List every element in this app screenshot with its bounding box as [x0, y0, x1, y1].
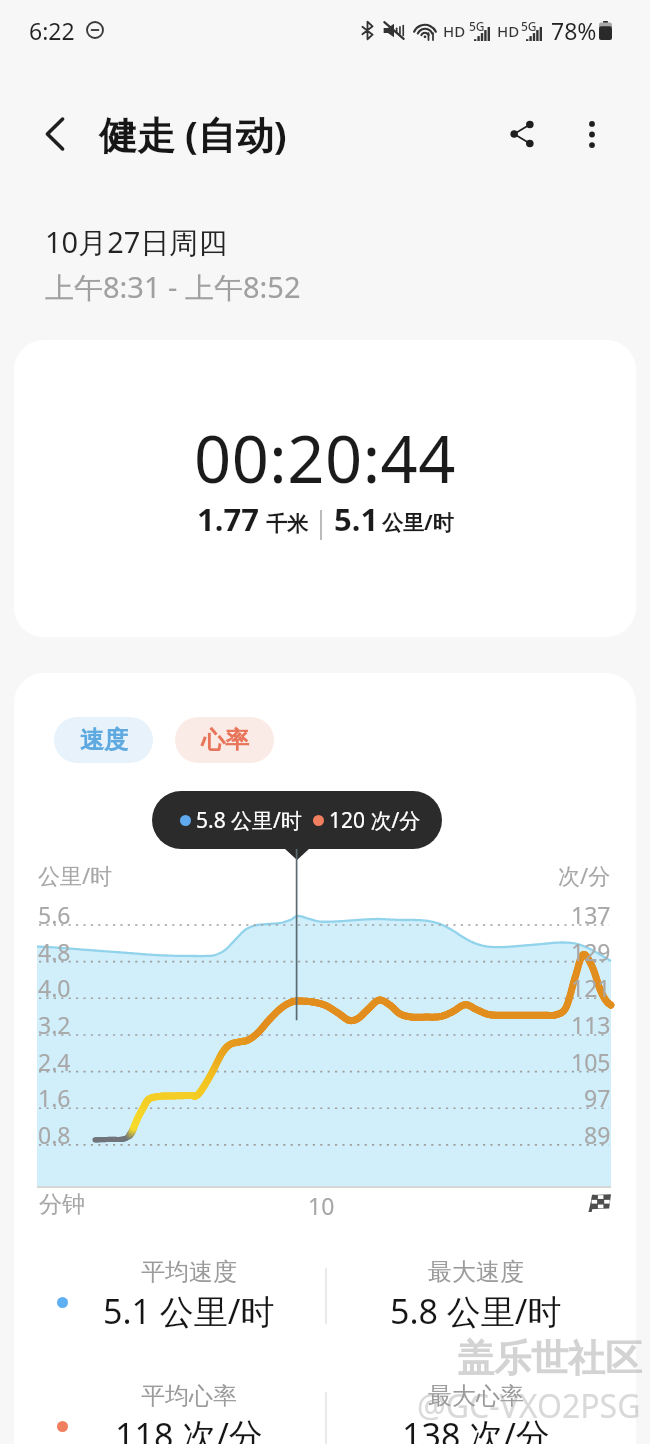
staticText: 心率: [201, 725, 249, 755]
staticText: 5G: [469, 18, 485, 34]
staticText: 5G: [521, 18, 537, 34]
staticText: 盖乐世社区: [457, 1335, 642, 1382]
staticText: 3.2: [38, 1009, 71, 1040]
staticText: 5.6: [38, 899, 71, 930]
staticText: 速度: [80, 725, 128, 755]
staticText: 4.0: [38, 972, 71, 1003]
staticText: 公里/时: [38, 860, 113, 890]
button[interactable]: 平均心率: [39, 1381, 339, 1444]
staticText: 最大心率: [428, 1381, 524, 1411]
staticText: 137: [571, 899, 611, 930]
staticText: 00:20:44: [194, 414, 456, 503]
staticText: 健走 (自动): [99, 108, 287, 160]
staticText: 138 次/分: [402, 1412, 550, 1444]
staticText: 平均心率: [141, 1381, 237, 1411]
staticText: HD: [497, 21, 520, 41]
button[interactable]: 最大速度: [326, 1257, 626, 1357]
staticText: 118 次/分: [115, 1412, 263, 1444]
staticText: 121: [571, 972, 611, 1003]
staticText: 次/分: [558, 860, 611, 890]
staticText: 120 次/分: [329, 806, 421, 835]
staticText: @GC-VXO2PSG: [417, 1384, 641, 1428]
button[interactable]: 5.8 公里/时: [152, 791, 442, 849]
staticText: 4.8: [38, 936, 71, 967]
staticText: 105: [571, 1046, 611, 1077]
staticText: 10月27日周四: [45, 222, 228, 262]
button[interactable]: 平均速度: [39, 1257, 339, 1357]
button[interactable]: 速度: [54, 717, 153, 763]
staticText: 2.4: [38, 1046, 71, 1077]
staticText: 5.8 公里/时: [390, 1288, 562, 1334]
staticText: 1.77: [197, 498, 259, 540]
staticText: 5.1: [334, 498, 379, 540]
button[interactable]: 最大心率: [326, 1381, 626, 1444]
staticText: 5.8 公里/时: [196, 806, 302, 835]
button[interactable]: Back: [25, 104, 85, 164]
staticText: 10: [308, 1190, 335, 1221]
staticText: 分钟: [39, 1190, 85, 1219]
staticText: HD: [443, 21, 466, 41]
staticText: 公里/时: [382, 508, 454, 537]
button[interactable]: 心率: [175, 717, 274, 763]
button[interactable]: More options: [566, 108, 618, 160]
staticText: 最大速度: [428, 1257, 524, 1287]
staticText: 0.8: [38, 1119, 71, 1150]
staticText: 6:22: [29, 15, 75, 46]
staticText: 129: [571, 936, 611, 967]
staticText: 78%: [551, 15, 597, 46]
staticText: 97: [584, 1082, 611, 1113]
staticText: 89: [584, 1119, 611, 1150]
staticText: 5.1 公里/时: [103, 1288, 275, 1334]
staticText: 平均速度: [141, 1257, 237, 1287]
staticText: 113: [571, 1009, 611, 1040]
staticText: 上午8:31 - 上午8:52: [45, 267, 301, 307]
button[interactable]: Share: [494, 106, 550, 162]
staticText: 1.6: [38, 1082, 71, 1113]
staticText: 千米: [266, 511, 308, 537]
